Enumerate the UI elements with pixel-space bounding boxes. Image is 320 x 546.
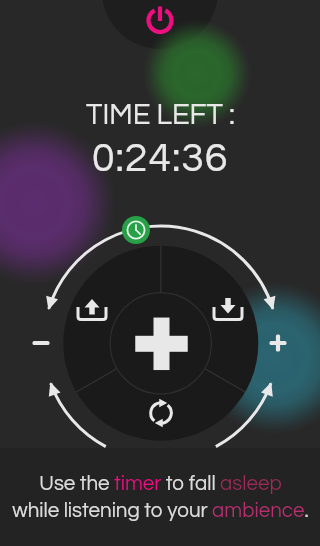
staticText: while listening to your ambience.: [12, 500, 309, 521]
staticText: 0:24:36: [92, 137, 229, 179]
button[interactable]: Add time: [135, 317, 187, 369]
button[interactable]: Increase volume: [78, 294, 110, 326]
button[interactable]: Decrease: [26, 328, 56, 358]
button[interactable]: Decrease volume: [212, 294, 244, 326]
staticText: TIME LEFT :: [86, 100, 235, 130]
staticText: Use the timer to fall asleep: [39, 473, 282, 494]
button[interactable]: Increase: [263, 328, 293, 358]
button[interactable]: Power: [141, 1, 179, 39]
button[interactable]: Repeat: [145, 398, 177, 430]
button[interactable]: Timer: [122, 216, 150, 244]
